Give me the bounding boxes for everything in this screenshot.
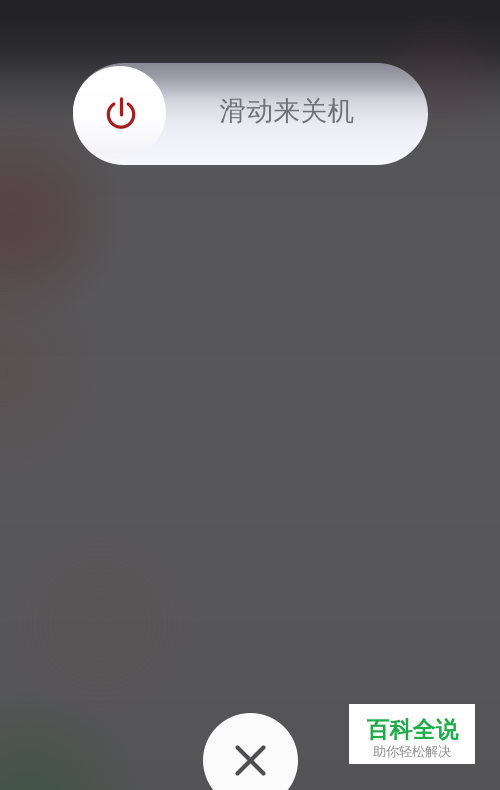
staticText: 百科全说 — [366, 716, 458, 744]
staticText: 助你轻松解决 — [373, 743, 451, 760]
button[interactable]: 滑动来关机 — [73, 63, 428, 165]
staticText: 滑动来关机 — [219, 95, 354, 127]
button[interactable]: Cancel — [203, 713, 298, 790]
